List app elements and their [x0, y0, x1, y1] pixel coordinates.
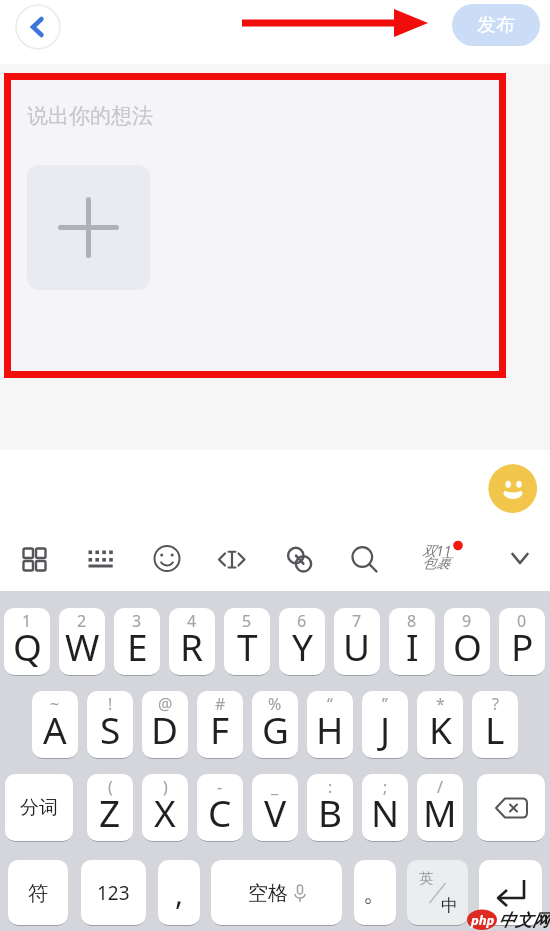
staticText: L — [485, 704, 505, 754]
button[interactable]: 2 — [59, 608, 105, 676]
staticText: , — [175, 873, 184, 914]
button[interactable]: 英 — [407, 860, 468, 926]
staticText: W — [65, 621, 100, 671]
button[interactable]: 符 — [8, 860, 68, 926]
button[interactable] — [477, 774, 545, 842]
staticText: I — [406, 621, 419, 671]
button[interactable]: ( — [87, 774, 133, 842]
button[interactable] — [84, 543, 116, 575]
button[interactable]: ” — [362, 691, 408, 759]
button[interactable]: 5 — [224, 608, 270, 676]
button[interactable]: ? — [472, 691, 518, 759]
staticText: P — [511, 621, 534, 671]
button[interactable]: 0 — [499, 608, 545, 676]
staticText: J — [380, 704, 391, 754]
staticText: - — [217, 776, 223, 798]
staticText: G — [262, 704, 289, 754]
staticText: Z — [99, 787, 121, 837]
button[interactable] — [27, 165, 150, 290]
button[interactable]: 分词 — [5, 774, 73, 842]
staticText: php — [471, 911, 495, 929]
button[interactable]: % — [252, 691, 298, 759]
button[interactable]: : — [307, 774, 353, 842]
staticText: 6 — [297, 610, 307, 632]
button[interactable]: ; — [362, 774, 408, 842]
button[interactable] — [15, 4, 61, 50]
staticText: ! — [108, 693, 113, 715]
staticText: * — [436, 693, 445, 715]
staticText: ; — [383, 776, 388, 798]
button[interactable]: “ — [307, 691, 353, 759]
staticText: 1 — [22, 610, 32, 632]
button[interactable]: ) — [142, 774, 188, 842]
staticText: 2 — [77, 610, 87, 632]
button[interactable]: 1 — [4, 608, 50, 676]
staticText: 9 — [462, 610, 472, 632]
staticText: H — [316, 704, 344, 754]
staticText: T — [237, 621, 258, 671]
button[interactable] — [151, 543, 183, 575]
staticText: 符 — [28, 881, 48, 906]
button[interactable]: 4 — [169, 608, 215, 676]
button[interactable]: # — [197, 691, 243, 759]
staticText: U — [343, 621, 371, 671]
staticText: 包裹 — [422, 555, 450, 573]
button[interactable]: @ — [142, 691, 188, 759]
staticText: M — [423, 787, 457, 837]
button[interactable]: ! — [87, 691, 133, 759]
staticText: 发布 — [477, 13, 515, 37]
staticText: ( — [108, 776, 113, 798]
staticText: 说出你的想法 — [27, 103, 153, 129]
button[interactable]: 空格 — [211, 860, 342, 926]
staticText: @ — [158, 693, 173, 715]
staticText: “ — [327, 693, 333, 715]
staticText: D — [151, 704, 179, 754]
staticText: % — [268, 693, 282, 715]
button[interactable] — [346, 543, 378, 575]
button[interactable] — [488, 464, 538, 514]
button[interactable]: ~ — [32, 691, 78, 759]
staticText: 。 — [363, 878, 387, 908]
button[interactable]: 发布 — [452, 4, 540, 46]
button[interactable]: 9 — [444, 608, 490, 676]
staticText: ? — [492, 693, 499, 715]
staticText: S — [100, 704, 121, 754]
staticText: 123 — [97, 880, 130, 906]
staticText: ” — [382, 693, 388, 715]
button[interactable]: * — [417, 691, 463, 759]
button[interactable]: 8 — [389, 608, 435, 676]
staticText: 英 — [419, 870, 433, 888]
button[interactable]: - — [197, 774, 243, 842]
button[interactable] — [18, 543, 50, 575]
staticText: 分词 — [20, 796, 58, 820]
staticText: V — [264, 787, 287, 837]
button[interactable]: 6 — [279, 608, 325, 676]
button[interactable]: , — [158, 860, 200, 926]
button[interactable]: _ — [252, 774, 298, 842]
button[interactable]: 123 — [81, 860, 146, 926]
staticText: 中 — [441, 895, 458, 916]
button[interactable] — [217, 543, 249, 575]
button[interactable] — [506, 545, 534, 573]
staticText: X — [154, 787, 176, 837]
button[interactable]: / — [417, 774, 463, 842]
button[interactable] — [285, 543, 317, 575]
staticText: C — [208, 787, 232, 837]
staticText: A — [43, 704, 67, 754]
button[interactable]: 7 — [334, 608, 380, 676]
staticText: # — [215, 693, 226, 715]
staticText: O — [453, 621, 482, 671]
staticText: 中文网 — [498, 910, 549, 931]
staticText: R — [180, 621, 204, 671]
staticText: 3 — [132, 610, 142, 632]
staticText: F — [210, 704, 230, 754]
staticText: _ — [271, 776, 279, 798]
button[interactable] — [479, 860, 542, 926]
button[interactable] — [415, 538, 467, 578]
button[interactable]: 3 — [114, 608, 160, 676]
staticText: 7 — [352, 610, 362, 632]
button[interactable]: 。 — [354, 860, 396, 926]
staticText: 8 — [407, 610, 417, 632]
staticText: 5 — [242, 610, 252, 632]
staticText: K — [429, 704, 452, 754]
